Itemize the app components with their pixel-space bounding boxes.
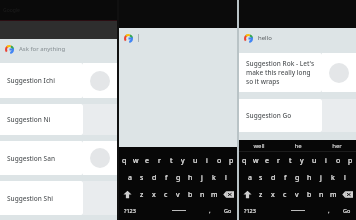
button[interactable]: d <box>267 169 279 186</box>
button[interactable]: Backspace <box>220 186 237 203</box>
button[interactable]: f <box>279 169 291 186</box>
button[interactable]: b <box>303 186 315 203</box>
button[interactable]: Suggestion Go <box>239 99 356 132</box>
button[interactable]: h <box>303 169 315 186</box>
button[interactable]: d <box>148 169 160 186</box>
button[interactable]: j <box>196 169 208 186</box>
button[interactable]: z <box>136 186 148 203</box>
button[interactable]: , <box>321 203 337 218</box>
button[interactable]: m <box>208 186 220 203</box>
button[interactable]: Suggestion Shi <box>0 181 117 215</box>
button[interactable]: ?123 <box>239 203 261 218</box>
button[interactable]: n <box>315 186 327 203</box>
button[interactable]: Ask for anything <box>0 39 117 59</box>
button[interactable]: p <box>225 152 237 169</box>
button[interactable]: y <box>177 152 189 169</box>
button[interactable]: k <box>208 169 220 186</box>
button[interactable]: j <box>315 169 327 186</box>
staticText: s <box>259 173 263 183</box>
button[interactable]: a <box>244 169 255 186</box>
button[interactable]: Go <box>218 203 237 218</box>
staticText: a <box>128 173 132 183</box>
button[interactable]: p <box>344 152 356 169</box>
button[interactable]: well <box>239 140 278 151</box>
button[interactable]: u <box>308 152 320 169</box>
button[interactable]: z <box>255 186 267 203</box>
button[interactable]: Suggestion Ichi <box>0 63 117 98</box>
button[interactable]: m <box>327 186 339 203</box>
button[interactable]: l <box>339 169 351 186</box>
button[interactable]: t <box>165 152 177 169</box>
staticText: Suggestion Go <box>246 111 292 120</box>
button[interactable] <box>119 28 237 48</box>
button[interactable]: her <box>317 140 356 151</box>
button[interactable]: u <box>189 152 201 169</box>
button[interactable]: o <box>332 152 344 169</box>
staticText: n <box>319 190 324 200</box>
button[interactable]: q <box>239 152 250 169</box>
button[interactable]: r <box>153 152 165 169</box>
button[interactable]: s <box>255 169 267 186</box>
button[interactable]: i <box>201 152 213 169</box>
button[interactable]: v <box>291 186 303 203</box>
staticText: k <box>331 173 335 183</box>
staticText: w <box>133 156 139 166</box>
staticText: Go <box>224 207 232 214</box>
button[interactable]: i <box>320 152 332 169</box>
button[interactable]: Go <box>337 203 356 218</box>
button[interactable]: v <box>172 186 184 203</box>
button[interactable]: ?123 <box>119 203 141 218</box>
staticText: well <box>253 142 265 150</box>
staticText: f <box>284 173 287 183</box>
button[interactable]: f <box>160 169 172 186</box>
button[interactable]: he <box>278 140 317 151</box>
button[interactable]: x <box>267 186 279 203</box>
button[interactable]: q <box>119 152 130 169</box>
staticText: Suggestion Rok - Let's make this really … <box>246 59 318 86</box>
staticText: c <box>164 190 168 200</box>
button[interactable]: w <box>130 152 141 169</box>
button[interactable]: Suggestion San <box>0 141 117 175</box>
staticText: s <box>140 173 144 183</box>
button[interactable]: e <box>141 152 153 169</box>
button[interactable]: t <box>284 152 296 169</box>
button[interactable]: Space <box>275 203 321 218</box>
button[interactable]: Shift <box>239 186 255 203</box>
staticText: p <box>229 156 234 166</box>
staticText: b <box>188 190 193 200</box>
button[interactable]: Backspace <box>339 186 356 203</box>
staticText: q <box>122 156 127 166</box>
button[interactable]: w <box>250 152 261 169</box>
button[interactable]: a <box>124 169 136 186</box>
staticText: e <box>145 156 149 166</box>
staticText: l <box>344 173 346 183</box>
button[interactable]: g <box>291 169 303 186</box>
button[interactable]: k <box>327 169 339 186</box>
button[interactable]: Space <box>155 203 202 218</box>
staticText: hello <box>258 34 272 42</box>
button[interactable]: h <box>184 169 196 186</box>
button[interactable]: b <box>184 186 196 203</box>
button[interactable]: n <box>196 186 208 203</box>
button[interactable]: l <box>220 169 232 186</box>
button[interactable]: y <box>296 152 308 169</box>
button[interactable]: Suggestion Ni <box>0 104 117 135</box>
button[interactable]: , <box>202 203 218 218</box>
button[interactable]: g <box>172 169 184 186</box>
button[interactable]: r <box>272 152 284 169</box>
button[interactable]: hello <box>239 28 356 48</box>
button[interactable]: o <box>213 152 225 169</box>
button[interactable]: c <box>160 186 172 203</box>
button[interactable]: Shift <box>119 186 136 203</box>
staticText: t <box>170 156 173 166</box>
button[interactable]: Suggestion Rok - Let's make this really … <box>239 53 356 92</box>
button[interactable]: x <box>148 186 160 203</box>
staticText: f <box>165 173 168 183</box>
button[interactable]: e <box>261 152 272 169</box>
staticText: o <box>217 156 222 166</box>
button[interactable]: s <box>136 169 148 186</box>
staticText: , <box>209 207 211 215</box>
button[interactable]: c <box>279 186 291 203</box>
